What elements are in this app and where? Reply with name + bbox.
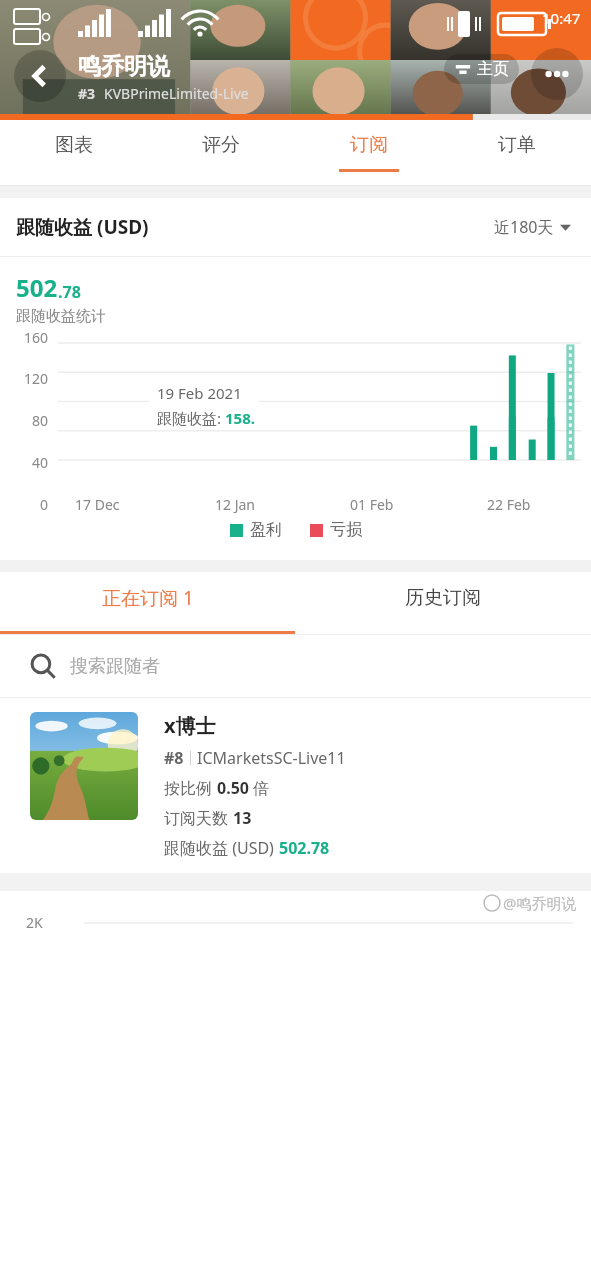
staticText: 502.78 xyxy=(279,837,330,859)
staticText: 主页 xyxy=(477,59,509,79)
staticText: 近180天 xyxy=(494,216,554,238)
button[interactable]: 正在订阅 1 xyxy=(0,572,295,634)
staticText: 502 xyxy=(16,271,58,304)
staticText: 跟随收益 (USD) xyxy=(164,837,279,859)
staticText: 160 xyxy=(10,328,48,347)
staticText: 80 xyxy=(10,411,48,430)
staticText: 评分 xyxy=(202,133,240,157)
button[interactable]: 订阅 xyxy=(295,120,443,185)
staticText: 跟随收益统计 xyxy=(16,307,106,326)
staticText: KVBPrimeLimited-Live xyxy=(104,84,249,103)
button[interactable]: x博士 xyxy=(0,698,591,873)
staticText: 订阅 xyxy=(350,133,388,157)
button[interactable]: 图表 xyxy=(0,120,147,185)
staticText: 盈利 xyxy=(250,520,282,540)
button[interactable]: More options xyxy=(531,48,583,100)
button[interactable]: 搜索跟随者 xyxy=(0,635,591,697)
staticText: 正在订阅 1 xyxy=(102,585,194,611)
staticText: 订阅天数 xyxy=(164,807,233,829)
button[interactable]: 主页 xyxy=(444,54,519,84)
staticText: 120 xyxy=(10,369,48,388)
staticText: 40 xyxy=(10,453,48,472)
staticText: 图表 xyxy=(55,133,93,157)
staticText: 22 Feb xyxy=(487,495,531,514)
button[interactable]: Back xyxy=(14,50,66,102)
staticText: @鸣乔明说 xyxy=(503,893,577,913)
staticText: 倍 xyxy=(249,777,270,799)
staticText: 17 Dec xyxy=(75,495,120,514)
staticText: 13 xyxy=(233,807,252,829)
button[interactable]: 订单 xyxy=(443,120,591,185)
staticText: .78 xyxy=(58,281,81,303)
staticText: 亏损 xyxy=(330,520,362,540)
staticText: 跟随收益: xyxy=(157,408,225,428)
staticText: 158.07 USD xyxy=(225,408,259,428)
staticText: 01 Feb xyxy=(350,495,394,514)
button[interactable]: 近180天 xyxy=(490,212,575,242)
staticText: ICMarketsSC-Live11 xyxy=(197,747,346,769)
staticText: 历史订阅 xyxy=(405,586,481,610)
staticText: #8 xyxy=(164,747,184,769)
staticText: #3 xyxy=(78,84,96,103)
staticText: 10:47 xyxy=(542,8,581,28)
staticText: 2K xyxy=(26,913,43,932)
staticText: 12 Jan xyxy=(215,495,255,514)
button[interactable]: 评分 xyxy=(147,120,295,185)
staticText: 鸣乔明说 xyxy=(78,52,170,81)
staticText: 搜索跟随者 xyxy=(70,655,160,678)
staticText: 订单 xyxy=(498,133,536,157)
staticText: 按比例 xyxy=(164,777,217,799)
staticText: 0 xyxy=(10,495,48,514)
staticText: 跟随收益 (USD) xyxy=(16,214,149,240)
staticText: 0.50 xyxy=(217,777,249,799)
button[interactable]: 历史订阅 xyxy=(295,572,591,634)
staticText: 19 Feb 2021 xyxy=(157,383,242,403)
staticText: x博士 xyxy=(164,712,216,739)
